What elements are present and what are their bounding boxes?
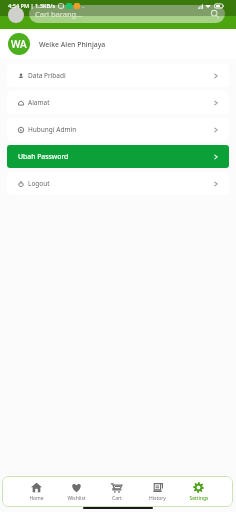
button[interactable]: WA: [0, 29, 236, 59]
staticText: WA: [11, 37, 27, 51]
staticText: Ubah Password: [18, 152, 69, 161]
staticText: Logout: [28, 179, 50, 188]
staticText: Settings: [189, 495, 209, 502]
button[interactable]: History: [137, 481, 178, 502]
button[interactable]: Settings: [178, 481, 219, 502]
button[interactable]: Alamat: [7, 91, 229, 114]
staticText: 4:54 PM | 1.3KB/s: [8, 2, 56, 10]
button[interactable]: Home: [16, 481, 56, 502]
button[interactable]: Wishlist: [56, 481, 96, 502]
staticText: Alamat: [28, 98, 50, 107]
staticText: Cart: [112, 495, 122, 502]
button[interactable]: Ubah Password: [7, 145, 229, 168]
staticText: Wishlist: [67, 495, 86, 502]
staticText: Weike Alen Phinjaya: [39, 40, 106, 49]
staticText: ..: [82, 3, 85, 10]
staticText: History: [149, 495, 166, 502]
button[interactable]: Hubungi Admin: [7, 118, 229, 141]
button[interactable]: Profil: [8, 7, 24, 23]
button[interactable]: Logout: [7, 172, 229, 195]
button[interactable]: Cari barang...: [29, 5, 225, 23]
staticText: Cari barang...: [35, 9, 83, 19]
staticText: Data Pribadi: [28, 71, 66, 80]
button[interactable]: Data Pribadi: [7, 64, 229, 87]
staticText: Home: [29, 495, 44, 502]
button[interactable]: Cart: [96, 481, 137, 502]
staticText: Hubungi Admin: [28, 125, 77, 134]
